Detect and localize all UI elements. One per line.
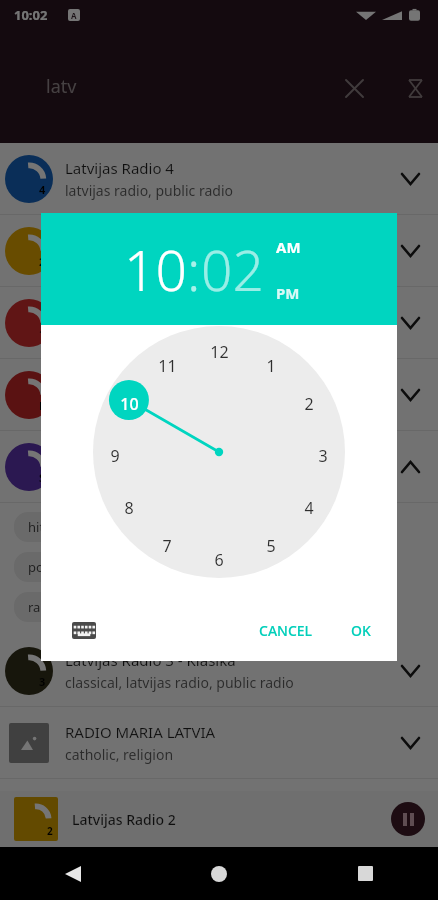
button[interactable]: 11 <box>153 352 181 380</box>
staticText: Latvijas Radio 3 - Klasika <box>65 650 236 670</box>
staticText: 7 <box>162 535 172 557</box>
button[interactable]: E <box>0 359 438 430</box>
staticText: 6 <box>214 549 224 571</box>
staticText: 10 <box>120 393 139 415</box>
button[interactable]: Expand <box>386 155 434 203</box>
staticText: 8 <box>124 497 134 519</box>
staticText: 1 <box>39 326 46 341</box>
button[interactable]: 2 <box>295 390 323 418</box>
button[interactable]: Pause <box>384 795 432 843</box>
button[interactable]: 3 <box>0 635 438 706</box>
button[interactable]: 10 <box>124 232 187 307</box>
button[interactable]: 9 <box>101 442 129 470</box>
button[interactable]: 1 <box>0 287 438 358</box>
button[interactable]: 1 <box>257 352 285 380</box>
button[interactable]: S <box>0 431 438 502</box>
staticText: 4 <box>304 497 314 519</box>
button[interactable]: 02 <box>201 232 264 307</box>
staticText: 10:02 <box>14 6 48 24</box>
staticText: A <box>71 10 77 21</box>
staticText: OK <box>351 621 371 640</box>
staticText: latv <box>46 74 77 99</box>
button[interactable]: Expand <box>386 227 434 275</box>
button[interactable]: Expand <box>386 371 434 419</box>
button[interactable]: Expand <box>386 719 434 767</box>
staticText: news, latvijas radio <box>65 325 190 344</box>
staticText: 3 <box>318 445 328 467</box>
button[interactable]: Back <box>0 847 146 900</box>
staticText: pop <box>28 558 52 576</box>
button[interactable]: Collapse <box>386 443 434 491</box>
button[interactable]: CANCEL <box>249 611 323 650</box>
staticText: classical, latvijas radio, public radio <box>65 673 294 692</box>
button[interactable]: pop <box>14 552 66 582</box>
staticText: 3 <box>39 674 46 689</box>
staticText: Latvijas Radio 4 <box>65 158 174 178</box>
staticText: Latvijas Radio 2 <box>72 810 384 829</box>
staticText: PM <box>276 283 300 303</box>
button[interactable]: AM <box>274 235 303 259</box>
staticText: : <box>187 232 201 307</box>
button[interactable]: Clear search <box>333 67 375 109</box>
button[interactable]: 5 <box>257 532 285 560</box>
staticText: 02 <box>201 232 264 307</box>
button[interactable]: Home <box>146 847 292 900</box>
staticText: 1 <box>266 355 276 377</box>
button[interactable]: Recent searches <box>394 67 436 109</box>
button[interactable]: hits <box>14 512 65 542</box>
staticText: latvijas radio, public radio <box>65 253 233 272</box>
staticText: 9 <box>110 445 120 467</box>
button[interactable]: 12 <box>205 338 233 366</box>
staticText: 12 <box>210 341 229 363</box>
button[interactable]: Expand <box>386 299 434 347</box>
staticText: E <box>39 398 46 413</box>
staticText: 2 <box>39 254 46 269</box>
button[interactable]: 7 <box>153 532 181 560</box>
staticText: 2 <box>304 393 314 415</box>
button[interactable]: 4 <box>0 143 438 214</box>
staticText: AM <box>276 237 301 257</box>
button[interactable]: Keyboard input <box>63 609 105 651</box>
staticText: pop music, hits <box>65 397 165 416</box>
staticText: radio swh <box>28 598 88 616</box>
staticText: S <box>39 470 46 485</box>
staticText: 11 <box>158 355 177 377</box>
button[interactable]: radio swh <box>14 592 102 622</box>
staticText: latvijas radio, public radio <box>65 181 233 200</box>
staticText: CANCEL <box>259 621 313 640</box>
staticText: 10 <box>124 232 187 307</box>
button[interactable]: 2 <box>0 791 438 847</box>
button[interactable]: Recents <box>292 847 438 900</box>
staticText: hits <box>28 518 51 536</box>
button[interactable]: 8 <box>115 494 143 522</box>
button[interactable]: RADIO MARIA LATVIA <box>0 707 438 778</box>
button[interactable]: OK <box>341 611 381 650</box>
staticText: catholic, religion <box>65 745 174 764</box>
button[interactable]: 6 <box>205 546 233 574</box>
staticText: 4 <box>39 182 46 197</box>
staticText: 5 <box>266 535 276 557</box>
button[interactable]: 2 <box>0 215 438 286</box>
button[interactable]: 3 <box>309 442 337 470</box>
staticText: Radio SWH <box>65 446 143 466</box>
staticText: pop, rock <box>65 469 127 488</box>
staticText: RADIO MARIA LATVIA <box>65 722 216 742</box>
staticText: EHR Latvia <box>65 374 140 394</box>
staticText: 2 <box>47 824 53 838</box>
button[interactable]: 4 <box>295 494 323 522</box>
button[interactable]: Expand <box>386 647 434 695</box>
button[interactable]: PM <box>274 281 302 305</box>
button[interactable]: 10 <box>115 390 143 418</box>
